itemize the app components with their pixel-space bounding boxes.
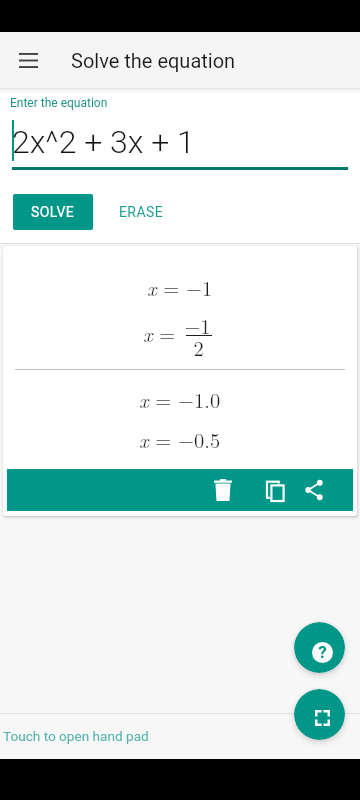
- staticText: Solve the equation: [71, 49, 236, 72]
- staticText: 2x^2 + 3x + 1: [12, 123, 195, 161]
- staticText: −1: [184, 311, 211, 340]
- button[interactable]: Copy result: [254, 470, 294, 510]
- button[interactable]: SOLVE: [13, 194, 93, 230]
- button[interactable]: Open navigation menu: [7, 39, 49, 81]
- staticText: ?: [318, 642, 327, 662]
- button[interactable]: ERASE: [105, 194, 177, 230]
- staticText: x = −1.0: [139, 385, 221, 414]
- staticText: Touch to open hand pad: [3, 728, 149, 744]
- staticText: SOLVE: [31, 204, 75, 220]
- staticText: Enter the equation: [10, 96, 108, 110]
- button[interactable]: Delete result: [203, 470, 243, 510]
- button[interactable]: Fullscreen: [294, 689, 345, 740]
- staticText: x = −1: [147, 273, 213, 302]
- staticText: 2: [193, 333, 204, 362]
- button[interactable]: Help: [294, 622, 345, 673]
- staticText: x = −0.5: [139, 425, 221, 454]
- staticText: x =: [143, 319, 176, 348]
- button[interactable]: Share result: [294, 470, 334, 510]
- staticText: ERASE: [119, 204, 163, 220]
